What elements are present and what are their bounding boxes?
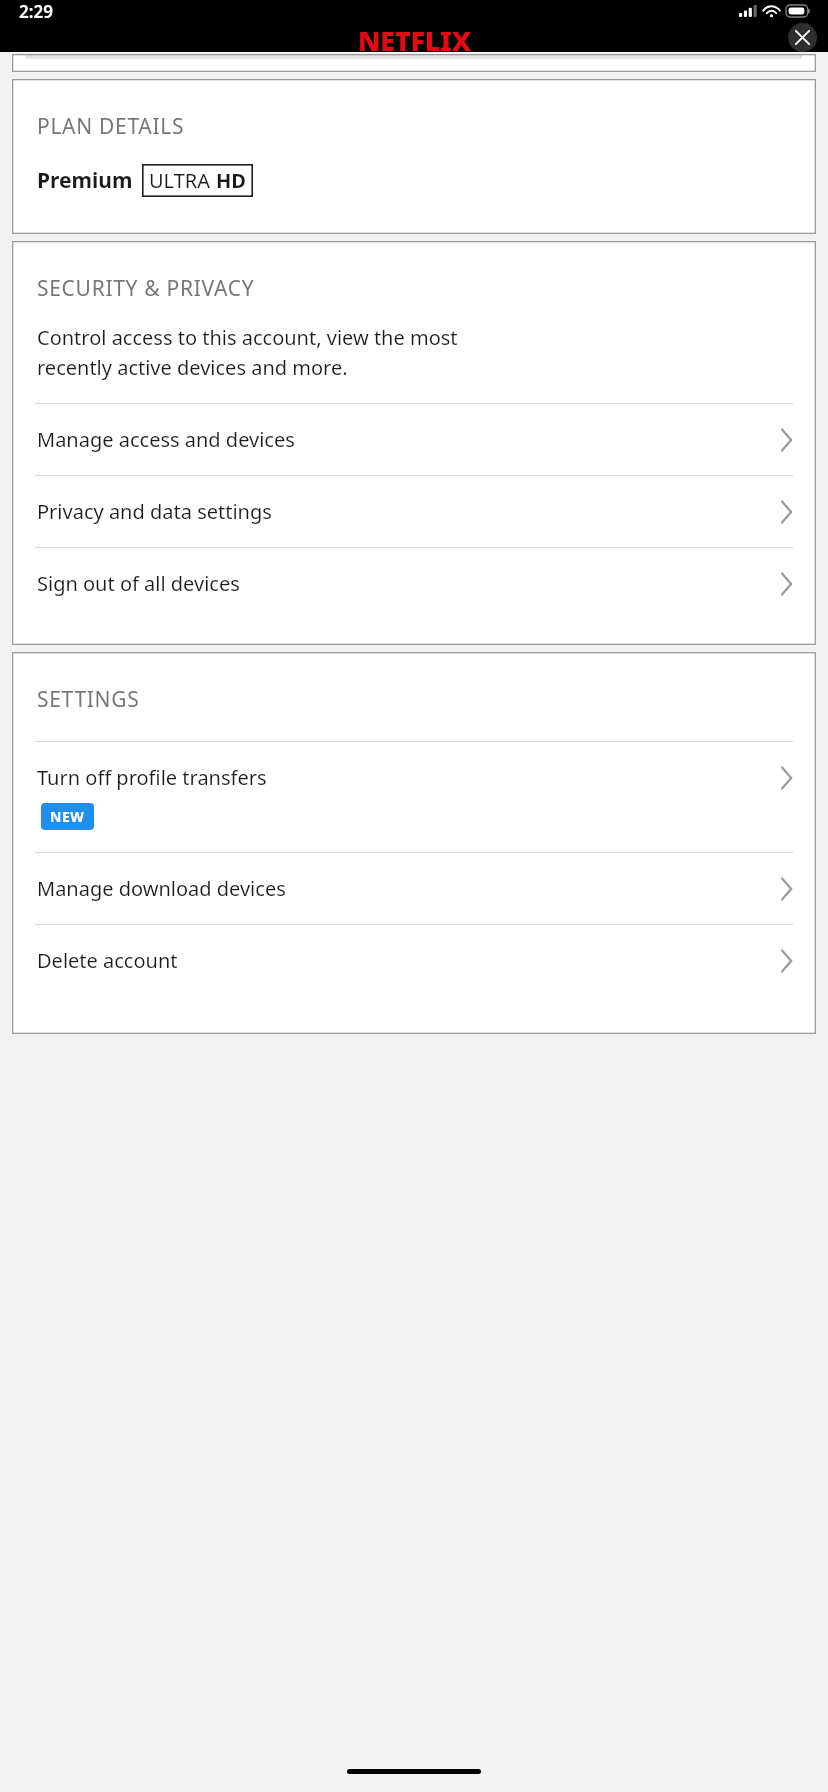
button[interactable]: Delete account (12, 925, 816, 996)
staticText: Manage download devices (37, 875, 286, 902)
staticText: 2:29 (19, 0, 53, 22)
button[interactable]: Manage access and devices (12, 404, 816, 475)
staticText: Manage access and devices (37, 426, 295, 453)
staticText: Delete account (37, 947, 178, 974)
staticText: Sign out of all devices (37, 570, 240, 597)
staticText: HD (216, 167, 246, 194)
button[interactable]: Privacy and data settings (12, 476, 816, 547)
button[interactable]: Sign out of all devices (12, 548, 816, 619)
staticText: Premium (37, 166, 133, 195)
staticText: Turn off profile transfers (37, 764, 267, 791)
staticText: PLAN DETAILS (37, 112, 185, 141)
button[interactable]: Manage download devices (12, 853, 816, 924)
staticText: SECURITY & PRIVACY (37, 274, 255, 303)
button[interactable]: Turn off profile transfers (12, 742, 816, 852)
staticText: SETTINGS (37, 685, 140, 714)
staticText: ULTRA (149, 167, 216, 194)
staticText: Privacy and data settings (37, 498, 272, 525)
staticText: NETFLIX (358, 22, 471, 52)
button[interactable]: Close (788, 23, 817, 52)
staticText: NEW (50, 807, 85, 826)
staticText: Control access to this account, view the… (37, 324, 458, 381)
